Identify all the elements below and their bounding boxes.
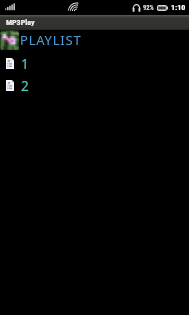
staticText: MP3Play [6,18,35,27]
other: Headset connected [132,4,141,12]
staticText: 2 [21,77,29,95]
staticText: 1:10 [171,3,186,12]
staticText: 1 [21,55,29,73]
button[interactable]: PLAYLIST [0,30,189,50]
other: Battery 92 percent [157,5,168,11]
staticText: PLAYLIST [20,31,82,49]
staticText: 92% [143,4,154,12]
button[interactable]: 2 [0,75,189,97]
button[interactable]: 1 [0,53,189,75]
button[interactable]: MP3Play [0,15,189,30]
